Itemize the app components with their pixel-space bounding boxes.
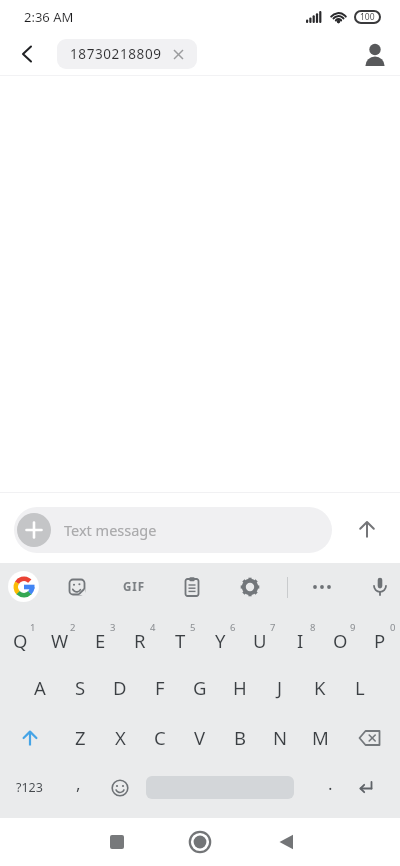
staticText: J	[277, 675, 283, 700]
button[interactable]: H	[220, 663, 260, 712]
button[interactable]: X	[100, 712, 140, 763]
button[interactable]	[360, 39, 390, 69]
staticText: GIF	[123, 579, 146, 595]
staticText: ,	[76, 772, 81, 795]
button[interactable]: K	[300, 663, 340, 712]
staticText: A	[34, 675, 46, 700]
button[interactable]: T	[160, 612, 200, 663]
button[interactable]: Y	[200, 612, 240, 663]
button[interactable]: W	[40, 612, 80, 663]
button[interactable]: M	[300, 712, 340, 763]
staticText: 100	[360, 11, 375, 23]
button[interactable]: O	[320, 612, 360, 663]
button[interactable]: A	[20, 663, 60, 712]
staticText: N	[273, 725, 288, 750]
staticText: D	[113, 675, 127, 700]
button[interactable]	[12, 38, 44, 70]
button[interactable]: ,	[58, 763, 98, 812]
button[interactable]	[183, 825, 217, 859]
button[interactable]	[142, 763, 298, 812]
staticText: Text message	[64, 520, 157, 540]
button[interactable]: GIF	[114, 567, 154, 607]
button[interactable]: R	[120, 612, 160, 663]
staticText: Z	[75, 725, 86, 750]
button[interactable]	[172, 567, 212, 607]
staticText: .	[328, 772, 333, 795]
staticText: X	[115, 725, 126, 750]
button[interactable]	[340, 712, 400, 763]
staticText: W	[51, 628, 69, 653]
button[interactable]: J	[260, 663, 300, 712]
button[interactable]: 18730218809	[57, 39, 197, 69]
button[interactable]	[360, 567, 400, 607]
button[interactable]	[17, 513, 51, 547]
staticText: O	[333, 628, 348, 653]
staticText: Q	[13, 628, 28, 653]
button[interactable]	[345, 507, 389, 551]
staticText: K	[314, 675, 326, 700]
staticText: 1	[30, 621, 36, 634]
staticText: H	[233, 675, 247, 700]
button[interactable]	[8, 571, 39, 602]
staticText: V	[194, 725, 206, 750]
button[interactable]	[57, 567, 97, 607]
button[interactable]: F	[140, 663, 180, 712]
button[interactable]: S	[60, 663, 100, 712]
button[interactable]: ?123	[0, 763, 58, 812]
staticText: R	[134, 628, 146, 653]
staticText: C	[154, 725, 166, 750]
staticText: 2	[70, 621, 76, 634]
button[interactable]	[0, 712, 60, 763]
staticText: ?123	[16, 779, 43, 796]
staticText: P	[374, 628, 386, 653]
button[interactable]: Q	[0, 612, 40, 663]
button[interactable]: U	[240, 612, 280, 663]
button[interactable]: P	[360, 612, 400, 663]
staticText: 5	[190, 621, 196, 634]
staticText: 7	[270, 621, 276, 634]
button[interactable]: Z	[60, 712, 100, 763]
staticText: F	[155, 675, 165, 700]
button[interactable]	[98, 763, 142, 812]
staticText: M	[312, 725, 329, 750]
staticText: 3	[110, 621, 116, 634]
staticText: U	[253, 628, 267, 653]
button[interactable]: G	[180, 663, 220, 712]
button[interactable]: I	[280, 612, 320, 663]
button[interactable]: C	[140, 712, 180, 763]
staticText: 2:36 AM	[24, 8, 74, 26]
staticText: 0	[390, 621, 396, 634]
staticText: 6	[230, 621, 236, 634]
staticText: E	[95, 628, 106, 653]
button[interactable]	[230, 567, 270, 607]
staticText: 9	[350, 621, 356, 634]
staticText: Y	[215, 628, 226, 653]
button[interactable]: N	[260, 712, 300, 763]
staticText: 8	[310, 621, 316, 634]
staticText: G	[193, 675, 207, 700]
button[interactable]: .	[298, 763, 344, 812]
button[interactable]: V	[180, 712, 220, 763]
staticText: S	[75, 675, 86, 700]
button[interactable]	[344, 763, 400, 812]
button[interactable]: L	[340, 663, 380, 712]
button[interactable]: E	[80, 612, 120, 663]
staticText: 4	[150, 621, 156, 634]
staticText: 18730218809	[70, 45, 162, 63]
button[interactable]: D	[100, 663, 140, 712]
staticText: T	[175, 628, 186, 653]
button[interactable]: Text message	[14, 507, 332, 553]
button[interactable]	[302, 567, 342, 607]
staticText: I	[297, 628, 304, 653]
button[interactable]: B	[220, 712, 260, 763]
staticText: L	[355, 675, 365, 700]
button[interactable]	[264, 825, 298, 859]
button[interactable]	[100, 825, 134, 859]
staticText: B	[234, 725, 247, 750]
